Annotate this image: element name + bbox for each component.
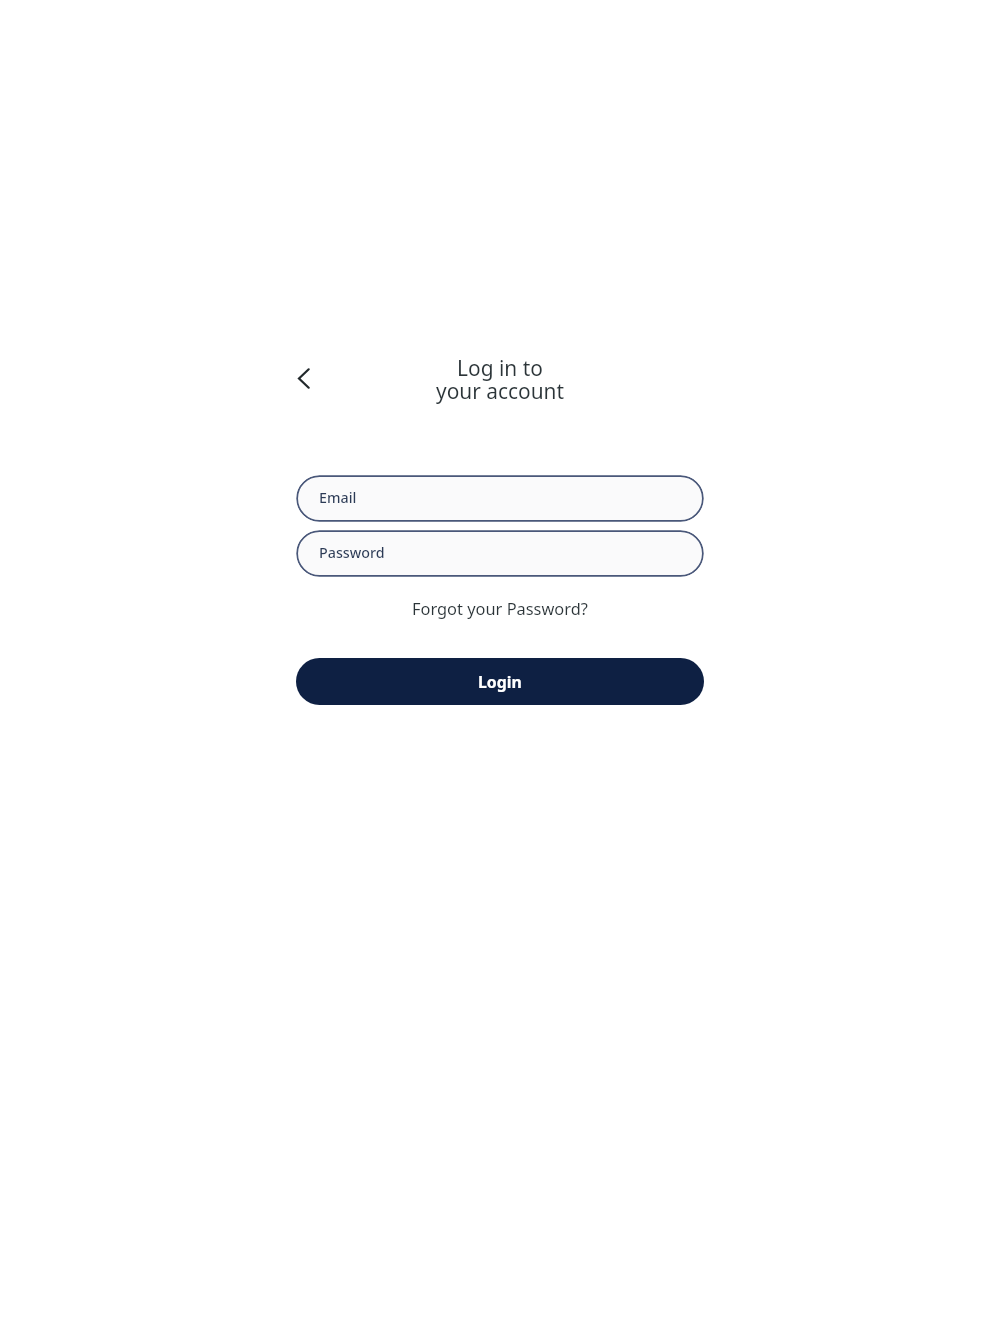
staticText: Email: [319, 488, 357, 507]
button[interactable]: Forgot your Password?: [296, 593, 704, 623]
button[interactable]: Login: [296, 658, 704, 705]
button[interactable]: Email: [296, 475, 704, 522]
staticText: Log in to your account: [0, 354, 1000, 405]
staticText: Password: [319, 543, 385, 562]
button[interactable]: Back: [281, 356, 326, 401]
button[interactable]: Password: [296, 530, 704, 577]
staticText: Forgot your Password?: [412, 597, 588, 619]
staticText: Login: [478, 671, 522, 693]
